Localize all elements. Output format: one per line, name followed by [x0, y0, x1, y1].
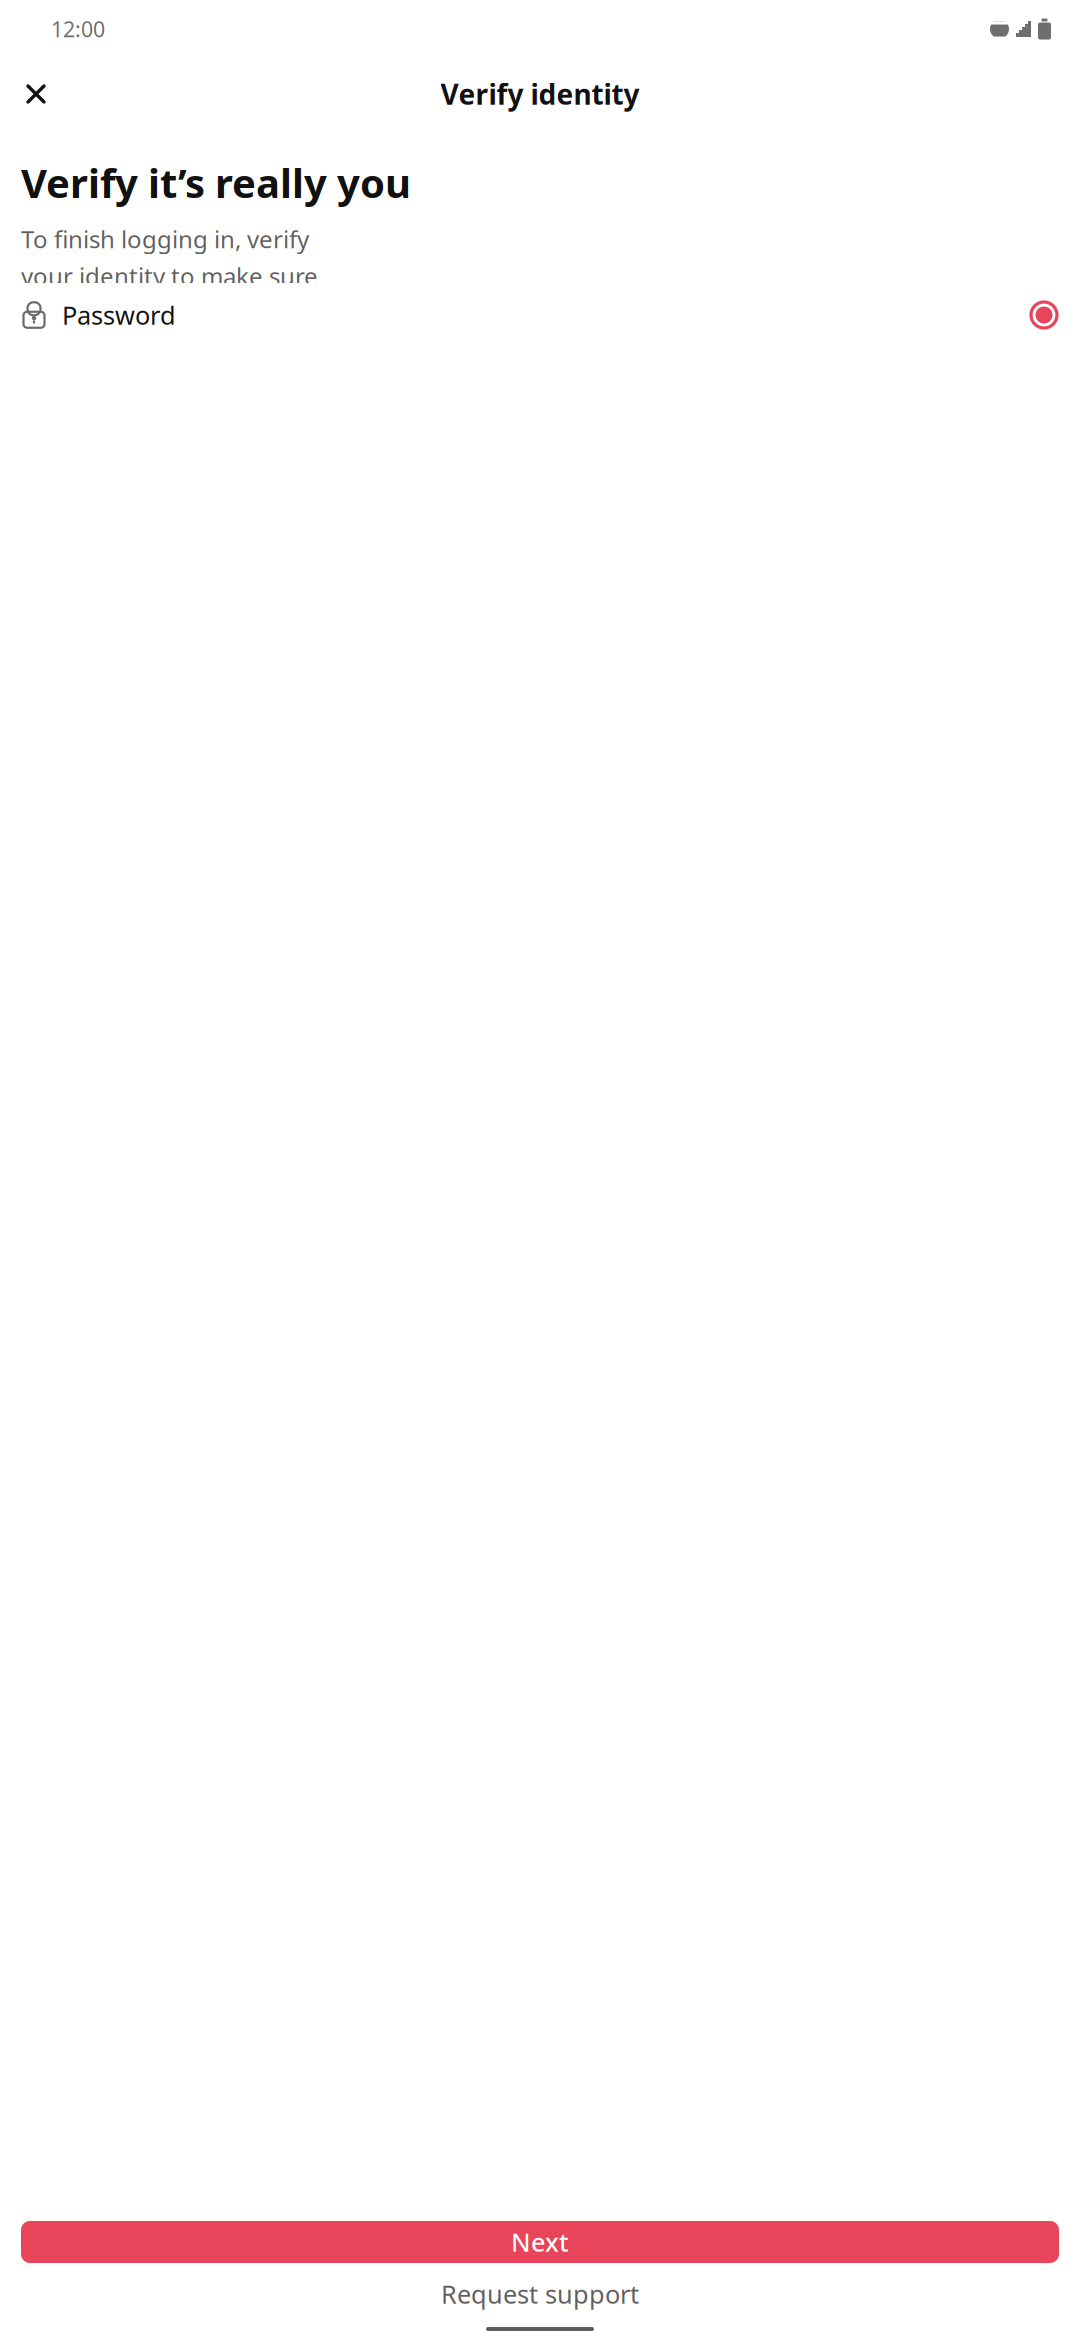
staticText: Password: [62, 298, 176, 332]
button[interactable]: Close: [12, 70, 60, 118]
button[interactable]: Request support: [0, 2271, 1080, 2317]
staticText: Verify it’s really you: [21, 156, 411, 209]
staticText: To finish logging in, verify your identi…: [21, 223, 318, 255]
button[interactable]: Next: [21, 2221, 1059, 2263]
button[interactable]: Password: [0, 283, 1080, 347]
staticText: Next: [511, 2225, 569, 2259]
staticText: Request support: [441, 2277, 639, 2311]
staticText: 12:00: [51, 15, 105, 43]
staticText: Verify identity: [440, 75, 639, 113]
